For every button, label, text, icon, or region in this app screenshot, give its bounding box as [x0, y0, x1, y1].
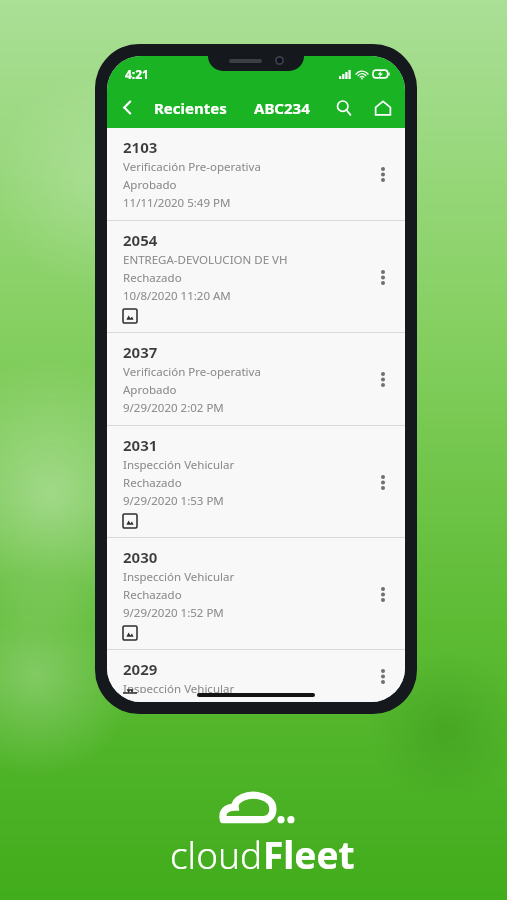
button[interactable]: 2031	[107, 426, 405, 537]
staticText: Rechazado	[123, 270, 182, 286]
staticText: Recientes	[154, 98, 227, 118]
button[interactable]: More options	[366, 575, 400, 613]
staticText: Rechazado	[123, 587, 182, 603]
staticText: ABC234	[254, 98, 310, 118]
staticText: Inspección Vehicular	[123, 457, 235, 473]
staticText: ENTREGA-DEVOLUCION DE VH	[123, 252, 288, 268]
staticText: 9/29/2020 1:52 PM	[123, 605, 224, 621]
button[interactable]: 2030	[107, 538, 405, 649]
staticText: Verificación Pre-operativa	[123, 364, 261, 380]
button[interactable]: 2054	[107, 221, 405, 332]
button[interactable]: Back	[107, 87, 147, 128]
staticText: Verificación Pre-operativa	[123, 159, 261, 175]
button[interactable]: 2103	[107, 128, 405, 220]
staticText: 2029	[123, 659, 158, 679]
button[interactable]: 2037	[107, 333, 405, 425]
staticText: 2030	[123, 547, 158, 567]
staticText: 9/29/2020 1:53 PM	[123, 493, 224, 509]
button[interactable]: More options	[366, 463, 400, 501]
staticText: 2054	[123, 230, 158, 250]
staticText: 4:21	[125, 66, 149, 82]
staticText: 2103	[123, 137, 158, 157]
staticText: 11/11/2020 5:49 PM	[123, 195, 231, 211]
staticText: 2037	[123, 342, 158, 362]
staticText: Rechazado	[123, 475, 182, 491]
staticText: 2031	[123, 435, 158, 455]
button[interactable]: More options	[366, 360, 400, 398]
staticText: Inspección Vehicular	[123, 569, 235, 585]
staticText: Aprobado	[123, 382, 177, 398]
staticText: 10/8/2020 11:20 AM	[123, 288, 231, 304]
button[interactable]: More options	[366, 659, 400, 693]
staticText: 9/29/2020 2:02 PM	[123, 400, 224, 416]
button[interactable]: More options	[366, 155, 400, 193]
staticText: Aprobado	[123, 177, 177, 193]
staticText: Inspección Vehicular	[123, 681, 235, 693]
staticText: Fleet	[263, 829, 355, 879]
staticText: cloud	[170, 829, 263, 879]
button[interactable]: 2029	[107, 650, 405, 702]
button[interactable]: More options	[366, 258, 400, 296]
button[interactable]: Search	[325, 87, 363, 128]
button[interactable]: Home	[363, 87, 403, 128]
